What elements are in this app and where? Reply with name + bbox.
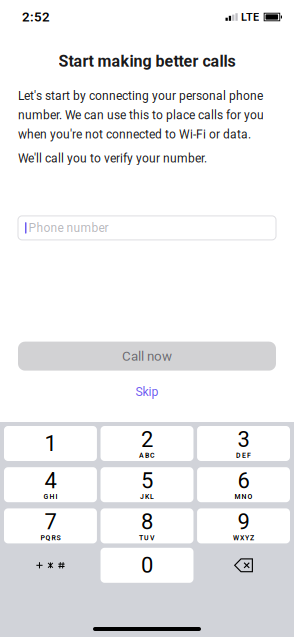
button[interactable]: 9 — [197, 508, 290, 543]
staticText: JKL — [140, 492, 154, 501]
button[interactable]: 8 — [100, 508, 193, 543]
staticText: 2:52 — [22, 9, 50, 25]
staticText: 4 — [44, 468, 56, 493]
staticText: 2 — [141, 426, 153, 452]
staticText: 3 — [237, 426, 249, 452]
staticText: Phone number — [28, 221, 108, 235]
staticText: 5 — [141, 468, 153, 493]
staticText: Start making better calls — [58, 52, 235, 71]
staticText: LTE — [241, 11, 259, 23]
staticText: 8 — [141, 509, 153, 535]
button[interactable]: Delete — [197, 548, 290, 583]
button[interactable]: 5 — [100, 467, 193, 502]
button[interactable]: Plus star pound — [4, 548, 97, 583]
button[interactable]: 7 — [4, 508, 97, 543]
button[interactable]: Skip — [115, 381, 178, 403]
button[interactable]: 1 — [4, 426, 97, 461]
staticText: GHI — [43, 492, 57, 501]
staticText: ABC — [139, 451, 155, 459]
staticText: TUV — [139, 534, 155, 542]
button[interactable]: 6 — [197, 467, 290, 502]
staticText: 1 — [44, 431, 56, 456]
button[interactable]: 2 — [100, 426, 193, 461]
staticText: Skip — [135, 385, 158, 399]
button[interactable]: 0 — [100, 548, 193, 583]
button[interactable]: 4 — [4, 467, 97, 502]
staticText: 9 — [237, 509, 249, 535]
staticText: MNO — [234, 492, 252, 501]
staticText: 6 — [237, 468, 249, 493]
staticText: DEF — [236, 451, 251, 459]
staticText: We'll call you to verify your number. — [18, 151, 207, 165]
staticText: PQRS — [40, 534, 60, 542]
button[interactable]: Call now — [18, 342, 276, 371]
staticText: WXYZ — [233, 534, 254, 542]
staticText: Let's start by connecting your personal … — [18, 89, 264, 141]
button[interactable]: 3 — [197, 426, 290, 461]
staticText: 0 — [141, 552, 153, 578]
staticText: 7 — [44, 509, 56, 535]
staticText: Call now — [122, 348, 172, 364]
